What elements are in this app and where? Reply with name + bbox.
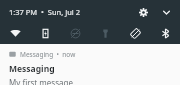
staticText: Messaging xyxy=(9,63,55,75)
button[interactable]: Auto rotate xyxy=(120,25,150,42)
button[interactable]: Settings xyxy=(133,2,153,22)
staticText: My first message xyxy=(9,77,73,85)
button[interactable]: Do not disturb xyxy=(60,25,90,42)
staticText: 1:37 PM • Sun, Jul 2 xyxy=(9,7,80,17)
button[interactable]: Flashlight xyxy=(90,25,120,42)
button[interactable]: Bluetooth xyxy=(150,25,180,42)
button[interactable]: Mobile data xyxy=(30,25,60,42)
button[interactable]: Messaging • now xyxy=(0,44,180,85)
button[interactable]: Expand xyxy=(156,2,176,22)
button[interactable]: Wi-Fi xyxy=(0,25,30,42)
staticText: Messaging • now xyxy=(20,50,76,59)
